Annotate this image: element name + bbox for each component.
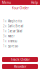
staticText: 3x <box>3 34 6 38</box>
staticText: 1x <box>3 44 6 48</box>
button[interactable]: 2x <box>3 25 37 28</box>
staticText: Reorder <box>14 64 26 69</box>
staticText: 1x <box>3 19 6 23</box>
staticText: Margherita <box>7 19 21 23</box>
staticText: Help <box>31 0 38 5</box>
button[interactable]: Help <box>31 0 38 5</box>
staticText: Garlic Bread <box>7 24 23 28</box>
button[interactable]: 1x <box>3 30 37 33</box>
staticText: Track Order <box>10 57 29 62</box>
staticText: Espresso <box>7 44 18 48</box>
staticText: 2x <box>3 24 6 28</box>
staticText: 1x <box>3 29 6 33</box>
staticText: Your Order <box>11 6 28 10</box>
staticText: Water <box>7 34 14 38</box>
staticText: Menu <box>2 0 11 5</box>
staticText: 1x <box>3 39 6 43</box>
button[interactable]: 1x <box>3 20 37 23</box>
button[interactable]: Menu <box>2 0 11 5</box>
button[interactable]: Reorder <box>2 64 38 69</box>
button[interactable]: Track Order <box>2 57 38 62</box>
button[interactable]: 1x <box>3 40 37 43</box>
button[interactable]: 3x <box>3 35 37 38</box>
button[interactable]: 1x <box>3 45 37 48</box>
staticText: Tiramisu <box>7 39 17 43</box>
staticText: Caesar Salad <box>7 29 22 33</box>
